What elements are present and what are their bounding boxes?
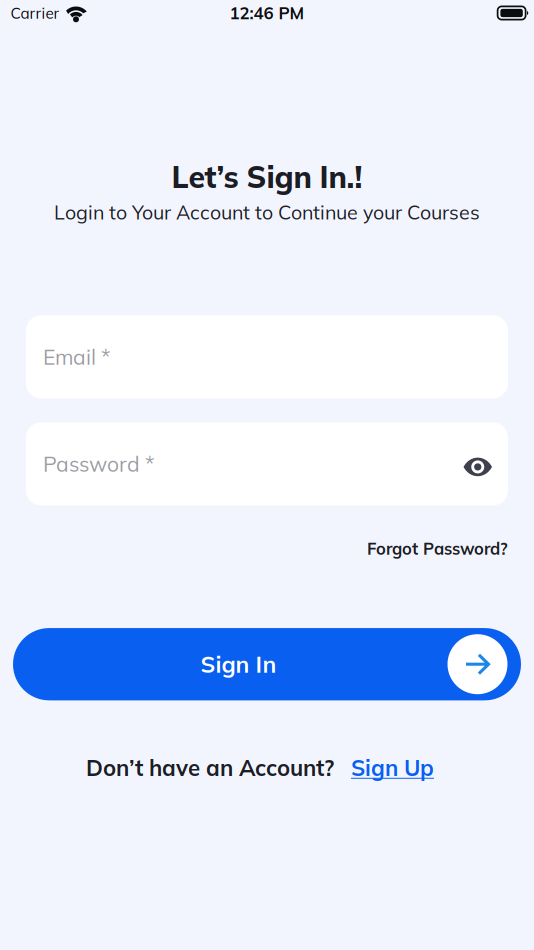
staticText: Login to Your Account to Continue your C…: [54, 200, 480, 224]
staticText: Email *: [43, 344, 111, 370]
staticText: Let’s Sign In.!: [171, 158, 362, 195]
button[interactable]: Forgot Password?: [367, 538, 508, 559]
staticText: Don’t have an Account?: [86, 754, 334, 781]
button[interactable]: Sign In: [13, 628, 521, 700]
staticText: 12:46 PM: [229, 2, 304, 24]
staticText: Forgot Password?: [367, 538, 508, 559]
staticText: Sign Up: [351, 754, 434, 781]
staticText: Sign In: [200, 650, 276, 679]
button[interactable]: Password *: [26, 422, 508, 505]
staticText: Carrier: [10, 3, 59, 23]
button[interactable]: Sign Up: [351, 754, 434, 781]
staticText: Password *: [43, 451, 155, 477]
